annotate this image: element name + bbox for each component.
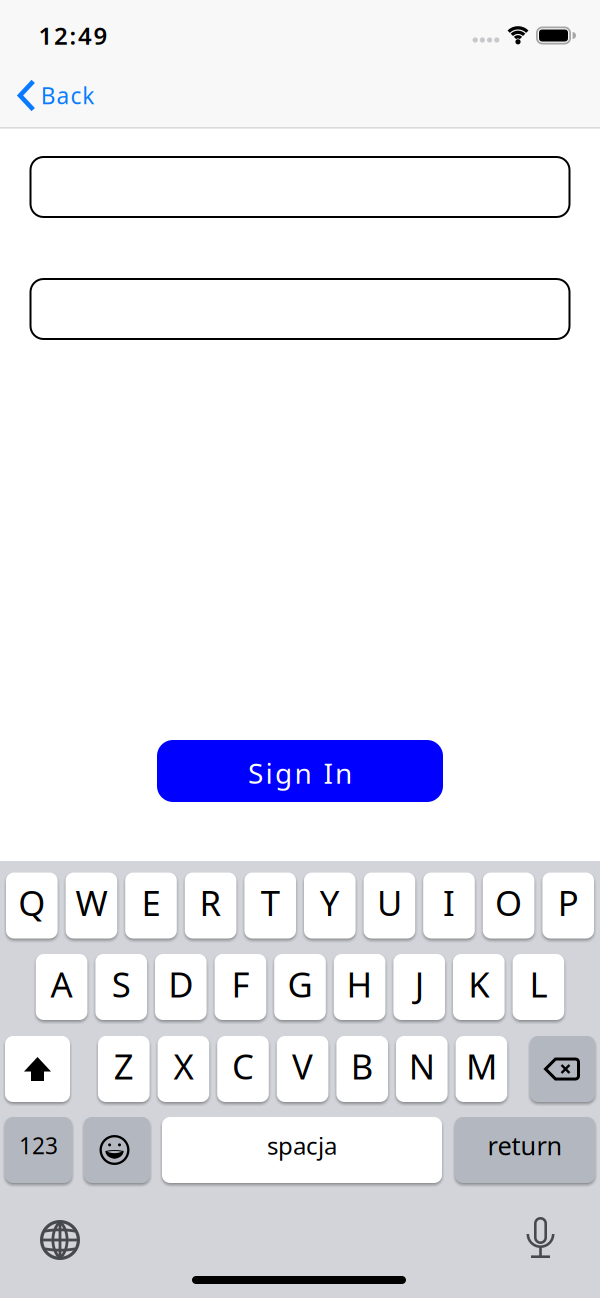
staticText: E <box>141 879 160 925</box>
button[interactable]: N <box>396 1036 448 1102</box>
button[interactable]: Z <box>98 1036 150 1102</box>
button[interactable]: R <box>185 872 236 938</box>
staticText: O <box>495 879 522 925</box>
staticText: C <box>232 1043 254 1089</box>
staticText: V <box>292 1043 313 1089</box>
staticText: H <box>347 961 373 1007</box>
button[interactable]: T <box>244 872 296 938</box>
button[interactable]: I <box>423 872 475 938</box>
staticText: X <box>173 1043 193 1089</box>
button[interactable]: E <box>125 872 177 938</box>
staticText: G <box>287 961 312 1007</box>
staticText: W <box>75 879 107 925</box>
button[interactable]: Dictate <box>520 1213 560 1259</box>
button[interactable]: Back <box>17 79 94 112</box>
button[interactable]: O <box>483 872 534 938</box>
staticText: B <box>351 1043 374 1089</box>
staticText: S <box>112 961 131 1007</box>
staticText: L <box>529 961 547 1007</box>
button[interactable]: F <box>215 954 266 1020</box>
button[interactable]: Emoji <box>84 1117 150 1183</box>
button[interactable]: W <box>66 872 117 938</box>
staticText: D <box>168 961 193 1007</box>
staticText: F <box>231 961 249 1007</box>
staticText: N <box>409 1043 435 1089</box>
button[interactable]: Q <box>6 872 58 938</box>
staticText: M <box>466 1043 497 1089</box>
button[interactable]: Next keyboard <box>39 1219 81 1261</box>
staticText: P <box>558 879 579 925</box>
button[interactable]: A <box>36 954 87 1020</box>
staticText: R <box>200 879 222 925</box>
staticText: Z <box>114 1043 134 1089</box>
button[interactable]: U <box>364 872 415 938</box>
button[interactable]: 123 <box>5 1117 72 1183</box>
button[interactable]: X <box>158 1036 209 1102</box>
button[interactable]: M <box>456 1036 507 1102</box>
button[interactable]: D <box>155 954 207 1020</box>
button[interactable]: return <box>455 1117 595 1183</box>
button[interactable]: L <box>513 954 564 1020</box>
button[interactable]: C <box>217 1036 269 1102</box>
staticText: 123 <box>19 1130 58 1160</box>
staticText: I <box>443 879 455 925</box>
button[interactable]: Sign In <box>157 740 443 802</box>
staticText: spacja <box>267 1130 337 1161</box>
button[interactable]: G <box>274 954 326 1020</box>
staticText: 12:49 <box>38 20 107 51</box>
staticText: K <box>468 961 489 1007</box>
button[interactable]: S <box>95 954 147 1020</box>
button[interactable]: P <box>542 872 594 938</box>
button[interactable]: Delete <box>530 1036 595 1102</box>
staticText: return <box>487 1129 562 1162</box>
staticText: J <box>415 961 424 1007</box>
button[interactable]: B <box>336 1036 388 1102</box>
staticText: Y <box>320 879 340 925</box>
button[interactable]: K <box>453 954 505 1020</box>
button[interactable]: J <box>393 954 445 1020</box>
button[interactable]: V <box>277 1036 328 1102</box>
staticText: Back <box>41 80 94 110</box>
button[interactable]: H <box>334 954 385 1020</box>
button[interactable]: Shift <box>5 1036 70 1102</box>
staticText: Q <box>18 879 45 925</box>
staticText: A <box>51 961 73 1007</box>
staticText: T <box>261 879 280 925</box>
button[interactable]: spacja <box>162 1117 442 1183</box>
staticText: Sign In <box>248 754 352 792</box>
staticText: U <box>377 879 402 925</box>
button[interactable]: Y <box>304 872 356 938</box>
